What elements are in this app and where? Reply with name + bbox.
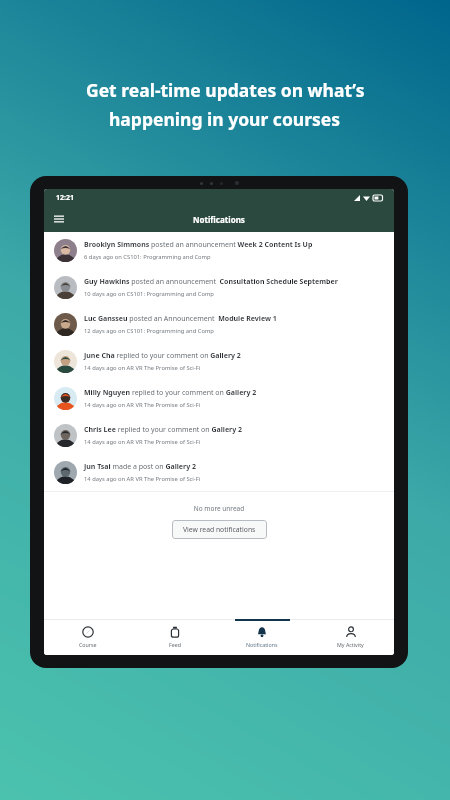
button[interactable]: Course (44, 619, 131, 655)
button[interactable]: My Activity (306, 619, 394, 655)
staticText: My Activity (337, 641, 364, 648)
staticText: Course (79, 641, 97, 648)
staticText: Milly Nguyen replied to your comment on … (84, 388, 257, 398)
staticText: Notifications (246, 641, 278, 648)
button[interactable]: View read notifications (172, 520, 267, 539)
staticText: Luc Gansseu posted an Announcement Modul… (84, 314, 277, 324)
staticText: Chris Lee replied to your comment on Gal… (84, 425, 243, 435)
staticText: 10 days ago on CS101: Programming and Co… (84, 290, 214, 298)
button[interactable]: Jun Tsai made a post on Gallery 2 (44, 454, 394, 491)
button[interactable]: Milly Nguyen replied to your comment on … (44, 380, 394, 417)
staticText: happening in your courses (109, 107, 341, 131)
button[interactable]: Chris Lee replied to your comment on Gal… (44, 417, 394, 454)
staticText: June Cha replied to your comment on Gall… (84, 351, 241, 361)
staticText: 12:21 (56, 193, 74, 203)
staticText: 14 days ago on AR VR The Promise of Sci-… (84, 475, 201, 483)
staticText: Feed (169, 641, 181, 648)
button[interactable]: June Cha replied to your comment on Gall… (44, 343, 394, 380)
staticText: Get real-time updates on what’s (86, 78, 365, 102)
staticText: No more unread (44, 504, 394, 513)
staticText: Guy Hawkins posted an announcement Consu… (84, 277, 338, 287)
button[interactable]: Menu (44, 209, 72, 229)
staticText: 6 days ago on CS101: Programming and Com… (84, 253, 211, 261)
staticText: 12 days ago on CS101: Programming and Co… (84, 327, 214, 335)
button[interactable]: Guy Hawkins posted an announcement Consu… (44, 269, 394, 306)
button[interactable]: Notifications (218, 619, 306, 655)
staticText: Brooklyn Simmons posted an announcement … (84, 240, 313, 250)
button[interactable]: Feed (131, 619, 218, 655)
staticText: Notifications (193, 214, 245, 225)
staticText: Jun Tsai made a post on Gallery 2 (84, 462, 196, 472)
staticText: 14 days ago on AR VR The Promise of Sci-… (84, 364, 201, 372)
button[interactable]: Brooklyn Simmons posted an announcement … (44, 232, 394, 269)
staticText: View read notifications (183, 525, 256, 534)
button[interactable]: Luc Gansseu posted an Announcement Modul… (44, 306, 394, 343)
staticText: 14 days ago on AR VR The Promise of Sci-… (84, 401, 201, 409)
staticText: 14 days ago on AR VR The Promise of Sci-… (84, 438, 201, 446)
